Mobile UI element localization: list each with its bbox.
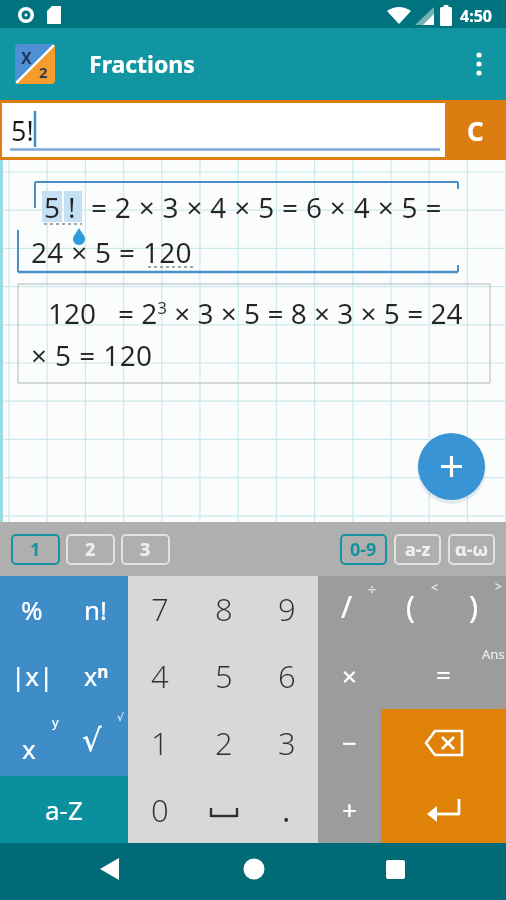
- staticText: |x|: [11, 658, 54, 693]
- staticText: 9: [278, 588, 296, 630]
- staticText: 0: [151, 789, 169, 831]
- button[interactable]: 1: [13, 536, 58, 563]
- button[interactable]: .: [255, 776, 318, 843]
- staticText: 1: [151, 722, 169, 764]
- staticText: √: [117, 711, 125, 724]
- staticText: 7: [151, 588, 169, 630]
- button[interactable]: [381, 776, 506, 843]
- staticText: √: [82, 722, 102, 758]
- button[interactable]: 9: [255, 576, 318, 642]
- button[interactable]: C: [445, 100, 506, 160]
- button[interactable]: 1: [128, 709, 192, 776]
- button[interactable]: [462, 44, 502, 84]
- button[interactable]: √: [64, 709, 128, 776]
- button[interactable]: 5: [192, 642, 255, 709]
- button[interactable]: −: [318, 709, 381, 776]
- staticText: 5 ! = 2 × 3 × 4 × 5 = 6 × 4 × 5 =: [44, 188, 442, 226]
- staticText: X: [21, 47, 32, 69]
- staticText: C: [467, 113, 484, 148]
- staticText: ): [469, 586, 478, 627]
- button[interactable]: a-Z: [0, 776, 128, 843]
- button[interactable]: ): [443, 576, 506, 642]
- staticText: (: [406, 586, 415, 627]
- button[interactable]: 2: [68, 536, 113, 563]
- staticText: 2: [39, 62, 48, 82]
- button[interactable]: %: [0, 576, 64, 642]
- staticText: 8: [215, 588, 233, 630]
- button[interactable]: 3: [123, 536, 168, 563]
- button[interactable]: 0-9: [342, 536, 385, 563]
- staticText: 2: [215, 722, 233, 764]
- button[interactable]: 7: [128, 576, 192, 642]
- button[interactable]: [381, 709, 506, 776]
- staticText: /: [341, 586, 353, 627]
- staticText: =: [436, 657, 451, 692]
- button[interactable]: [192, 776, 255, 843]
- button[interactable]: α-ω: [450, 536, 493, 563]
- button[interactable]: [85, 846, 135, 896]
- staticText: 4:50: [460, 5, 492, 27]
- staticText: Fractions: [89, 48, 195, 79]
- staticText: +: [342, 792, 357, 827]
- button[interactable]: 4: [128, 642, 192, 709]
- button[interactable]: [370, 846, 420, 896]
- staticText: xn: [84, 659, 109, 693]
- button[interactable]: |x|: [0, 642, 64, 709]
- button[interactable]: +: [318, 776, 381, 843]
- staticText: × 5 = 120: [31, 336, 153, 374]
- staticText: 5!: [11, 112, 34, 149]
- staticText: a-z: [405, 537, 431, 562]
- button[interactable]: 3: [255, 709, 318, 776]
- button[interactable]: 8: [192, 576, 255, 642]
- staticText: 5: [215, 655, 233, 697]
- button[interactable]: x: [0, 709, 64, 776]
- staticText: 0-9: [350, 537, 377, 562]
- staticText: ÷: [368, 580, 377, 599]
- staticText: n!: [84, 592, 108, 627]
- staticText: a-Z: [45, 792, 83, 827]
- button[interactable]: ×: [318, 642, 381, 709]
- staticText: 4: [151, 655, 169, 697]
- staticText: 120 = 23 × 3 × 5 = 8 × 3 × 5 = 24: [48, 294, 463, 332]
- button[interactable]: =: [381, 642, 506, 709]
- button[interactable]: 0: [128, 776, 192, 843]
- staticText: y: [52, 713, 59, 731]
- staticText: x: [22, 731, 36, 766]
- staticText: %: [21, 592, 43, 627]
- staticText: Ans: [482, 645, 505, 663]
- button[interactable]: X: [15, 44, 55, 84]
- button[interactable]: 5!: [2, 103, 445, 157]
- staticText: ×: [342, 658, 357, 693]
- button[interactable]: a-z: [396, 536, 439, 563]
- button[interactable]: 2: [192, 709, 255, 776]
- staticText: α-ω: [455, 537, 489, 562]
- staticText: 1: [30, 537, 41, 562]
- button[interactable]: 6: [255, 642, 318, 709]
- staticText: 3: [278, 722, 296, 764]
- button[interactable]: n!: [64, 576, 128, 642]
- staticText: −: [342, 725, 357, 760]
- staticText: 3: [140, 537, 151, 562]
- staticText: .: [282, 789, 291, 831]
- button[interactable]: [418, 433, 485, 500]
- staticText: 2: [85, 537, 96, 562]
- button[interactable]: (: [380, 576, 443, 642]
- button[interactable]: [229, 846, 279, 896]
- staticText: >: [495, 578, 502, 594]
- button[interactable]: /: [318, 576, 380, 642]
- button[interactable]: xn: [64, 642, 128, 709]
- staticText: 24 × 5 = 120: [31, 233, 192, 271]
- staticText: 6: [278, 655, 296, 697]
- staticText: <: [431, 579, 438, 595]
